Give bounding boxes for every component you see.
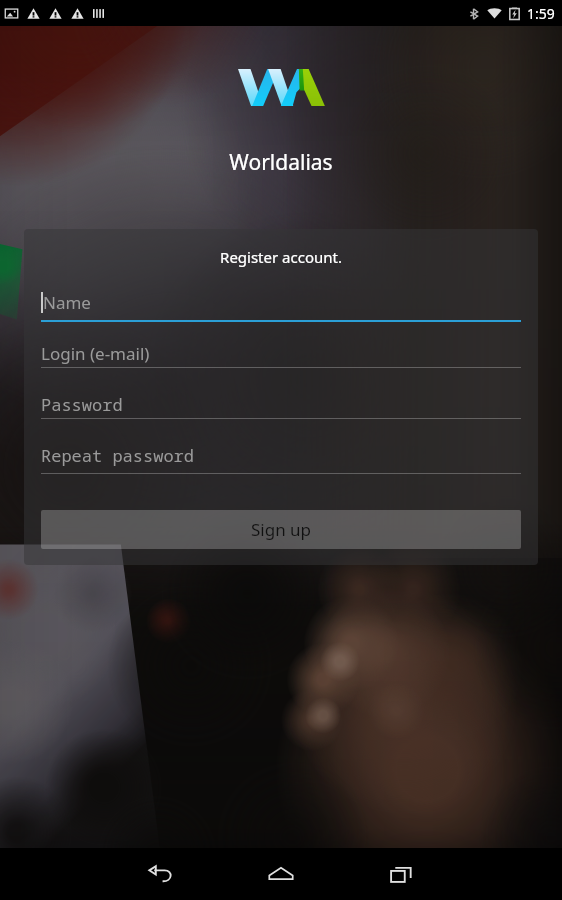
staticText: Register account. bbox=[24, 247, 538, 267]
staticText: Name bbox=[43, 291, 91, 314]
button[interactable]: Home bbox=[221, 848, 341, 900]
staticText: 1:59 bbox=[527, 4, 555, 23]
button[interactable]: Recent apps bbox=[341, 848, 461, 900]
staticText: Worldalias bbox=[0, 148, 562, 177]
button[interactable]: Back bbox=[101, 848, 221, 900]
button[interactable]: Login (e-mail) bbox=[41, 342, 521, 380]
button[interactable]: Repeat password bbox=[41, 444, 521, 482]
button[interactable]: Name bbox=[41, 291, 521, 329]
button[interactable]: Password bbox=[41, 393, 521, 431]
staticText: Password bbox=[41, 393, 123, 416]
staticText: Repeat password bbox=[41, 444, 194, 467]
staticText: Login (e-mail) bbox=[41, 342, 150, 365]
button[interactable]: Sign up bbox=[41, 510, 521, 549]
staticText: Sign up bbox=[251, 518, 312, 541]
